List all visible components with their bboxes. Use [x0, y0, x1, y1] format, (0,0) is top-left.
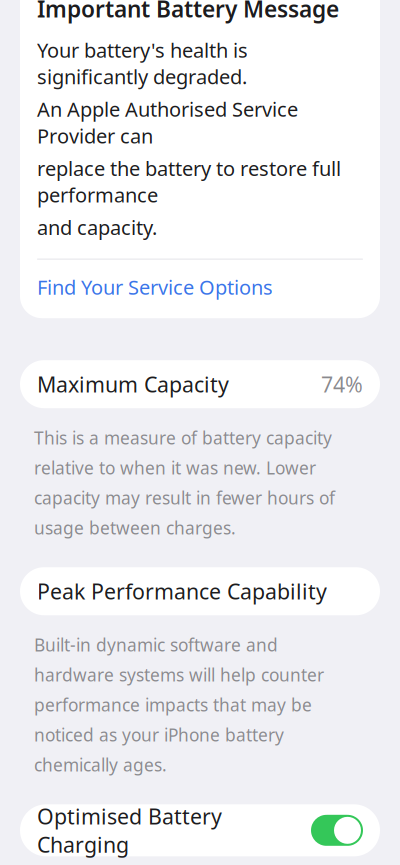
- staticText: Built-in dynamic software and hardware s…: [34, 633, 324, 776]
- staticText: Find Your Service Options: [37, 274, 273, 300]
- staticText: and capacity.: [37, 214, 157, 241]
- button[interactable]: Find Your Service Options: [37, 274, 363, 300]
- staticText: This is a measure of battery capacity re…: [34, 426, 335, 539]
- staticText: replace the battery to restore full perf…: [37, 155, 341, 208]
- staticText: Your battery's health is significantly d…: [37, 37, 248, 90]
- staticText: Peak Performance Capability: [37, 577, 327, 605]
- staticText: Optimised Battery Charging: [37, 802, 222, 859]
- staticText: Maximum Capacity: [37, 370, 229, 398]
- staticText: Important Battery Message: [37, 0, 339, 24]
- staticText: 74%: [321, 370, 363, 398]
- staticText: An Apple Authorised Service Provider can: [37, 96, 298, 149]
- button[interactable]: Optimised Battery Charging: [311, 815, 363, 846]
- button[interactable]: Peak Performance Capability: [20, 567, 380, 615]
